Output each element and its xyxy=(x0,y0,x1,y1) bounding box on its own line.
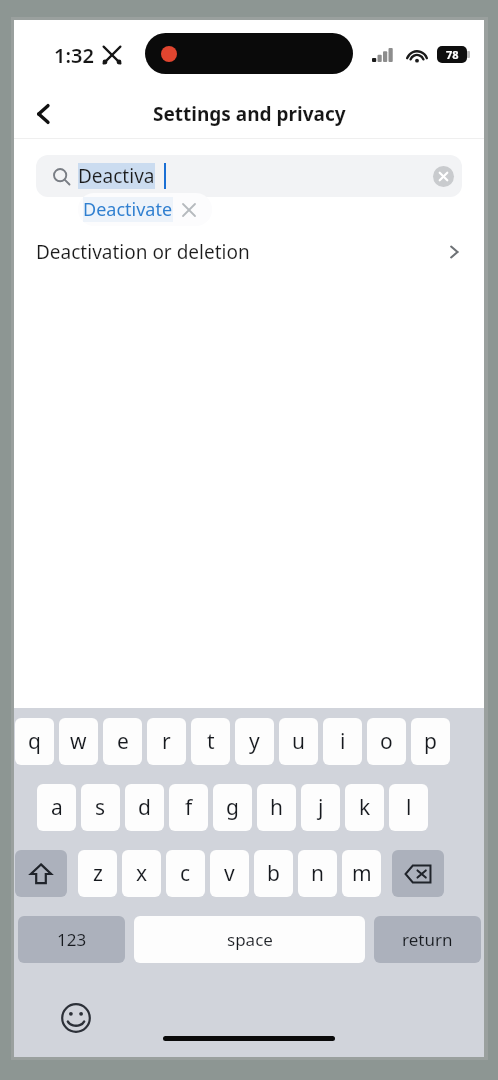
button[interactable]: space xyxy=(134,916,365,963)
staticText: j xyxy=(318,793,324,822)
button[interactable]: j xyxy=(301,784,340,831)
button[interactable]: c xyxy=(166,850,205,897)
staticText: Deactivation or deletion xyxy=(36,239,250,265)
staticText: q xyxy=(28,727,41,756)
staticText: u xyxy=(292,727,305,756)
staticText: f xyxy=(185,793,193,822)
staticText: v xyxy=(224,859,235,888)
button[interactable]: t xyxy=(191,718,230,765)
staticText: 1:32 xyxy=(54,42,94,69)
button[interactable]: Shift xyxy=(15,850,67,897)
button[interactable]: f xyxy=(169,784,208,831)
button[interactable]: Clear search xyxy=(426,159,460,193)
staticText: l xyxy=(406,793,412,822)
button[interactable]: Emoji xyxy=(56,998,96,1038)
button[interactable]: Backspace xyxy=(392,850,444,897)
staticText: e xyxy=(117,727,129,756)
staticText: p xyxy=(424,727,437,756)
button[interactable]: e xyxy=(103,718,142,765)
staticText: z xyxy=(93,859,103,888)
button[interactable]: 123 xyxy=(18,916,125,963)
staticText: 78 xyxy=(446,47,459,62)
button[interactable]: l xyxy=(389,784,428,831)
button[interactable]: h xyxy=(257,784,296,831)
staticText: return xyxy=(402,928,453,951)
button[interactable]: v xyxy=(210,850,249,897)
button[interactable]: g xyxy=(213,784,252,831)
staticText: w xyxy=(70,727,87,756)
staticText: h xyxy=(270,793,283,822)
staticText: m xyxy=(352,859,372,888)
button[interactable]: w xyxy=(59,718,98,765)
button[interactable]: q xyxy=(15,718,54,765)
button[interactable]: i xyxy=(323,718,362,765)
staticText: r xyxy=(162,727,171,756)
button[interactable]: s xyxy=(81,784,120,831)
button[interactable]: a xyxy=(37,784,76,831)
staticText: k xyxy=(359,793,371,822)
button[interactable]: n xyxy=(298,850,337,897)
button[interactable]: Deactivate xyxy=(78,193,212,226)
staticText: g xyxy=(226,793,239,822)
staticText: t xyxy=(207,727,215,756)
staticText: Deactiva xyxy=(78,163,155,189)
staticText: 123 xyxy=(57,928,87,951)
button[interactable]: p xyxy=(411,718,450,765)
staticText: a xyxy=(51,793,63,822)
button[interactable]: Back xyxy=(20,90,68,138)
staticText: b xyxy=(267,859,280,888)
staticText: c xyxy=(180,859,191,888)
button[interactable]: r xyxy=(147,718,186,765)
staticText: i xyxy=(340,727,346,756)
button[interactable]: x xyxy=(122,850,161,897)
button[interactable]: return xyxy=(374,916,481,963)
button[interactable]: Deactiva xyxy=(36,155,462,197)
button[interactable]: o xyxy=(367,718,406,765)
staticText: s xyxy=(95,793,106,822)
button[interactable]: m xyxy=(342,850,381,897)
staticText: y xyxy=(249,727,260,756)
button[interactable]: Deactivation or deletion xyxy=(14,231,484,273)
staticText: space xyxy=(227,928,273,951)
button[interactable]: z xyxy=(78,850,117,897)
staticText: d xyxy=(138,793,151,822)
button[interactable]: d xyxy=(125,784,164,831)
button[interactable]: u xyxy=(279,718,318,765)
staticText: Settings and privacy xyxy=(153,101,346,127)
staticText: o xyxy=(380,727,393,756)
button[interactable]: b xyxy=(254,850,293,897)
staticText: x xyxy=(136,859,148,888)
button[interactable]: k xyxy=(345,784,384,831)
staticText: n xyxy=(311,859,324,888)
staticText: Deactivate xyxy=(83,197,173,222)
button[interactable]: y xyxy=(235,718,274,765)
